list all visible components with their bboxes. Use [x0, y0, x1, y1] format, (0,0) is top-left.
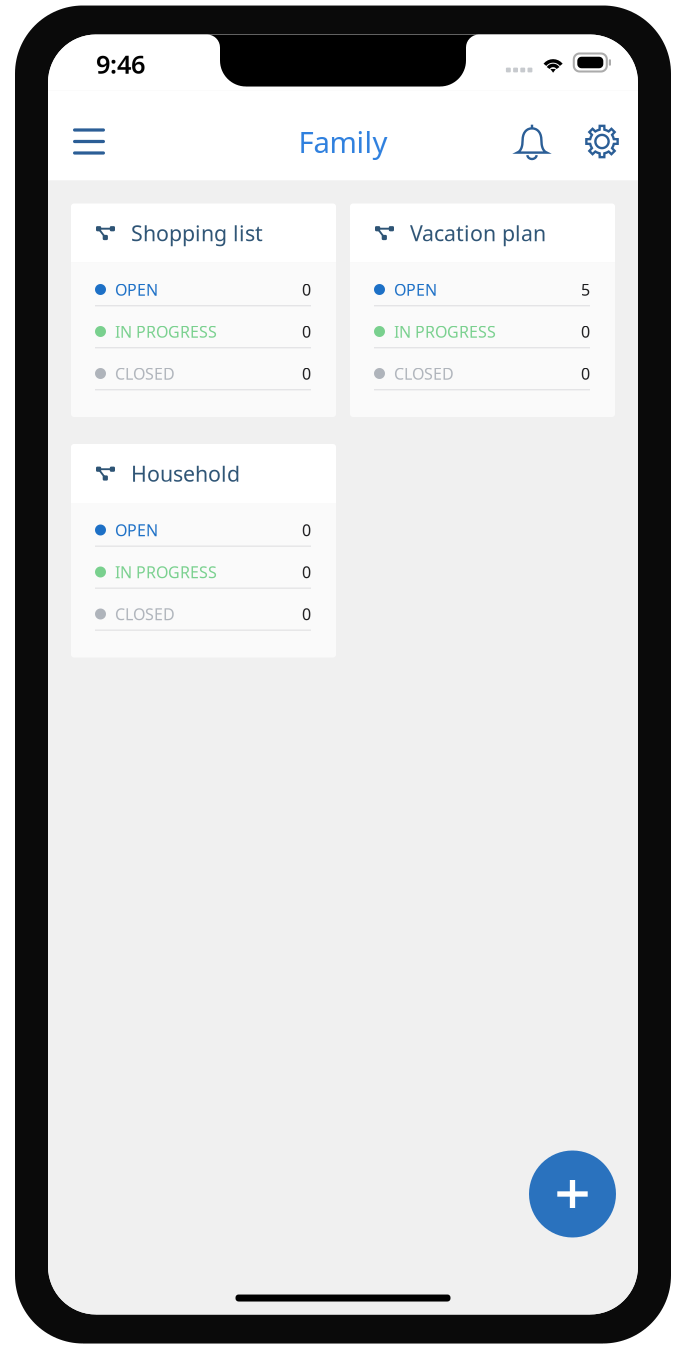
- staticText: OPEN: [115, 279, 158, 300]
- staticText: IN PROGRESS: [115, 561, 217, 583]
- staticText: OPEN: [394, 279, 437, 300]
- staticText: 9:46: [96, 47, 145, 81]
- staticText: Household: [131, 459, 240, 488]
- staticText: CLOSED: [115, 603, 175, 625]
- staticText: IN PROGRESS: [394, 321, 496, 342]
- staticText: 0: [581, 321, 590, 342]
- staticText: Shopping list: [131, 219, 263, 247]
- staticText: CLOSED: [394, 363, 454, 384]
- button[interactable]: Menu: [61, 113, 117, 169]
- staticText: 0: [302, 519, 311, 541]
- staticText: OPEN: [115, 519, 158, 541]
- staticText: 0: [302, 561, 311, 583]
- staticText: 0: [581, 363, 590, 384]
- staticText: Family: [298, 122, 387, 161]
- staticText: CLOSED: [115, 363, 175, 384]
- button[interactable]: Notifications: [506, 115, 558, 167]
- staticText: 0: [302, 363, 311, 384]
- staticText: 0: [302, 603, 311, 625]
- staticText: 0: [302, 279, 311, 300]
- staticText: 0: [302, 321, 311, 342]
- button[interactable]: Add: [529, 1150, 616, 1237]
- staticText: Vacation plan: [410, 219, 546, 247]
- staticText: 5: [581, 279, 590, 300]
- button[interactable]: Settings: [576, 115, 628, 167]
- staticText: IN PROGRESS: [115, 321, 217, 342]
